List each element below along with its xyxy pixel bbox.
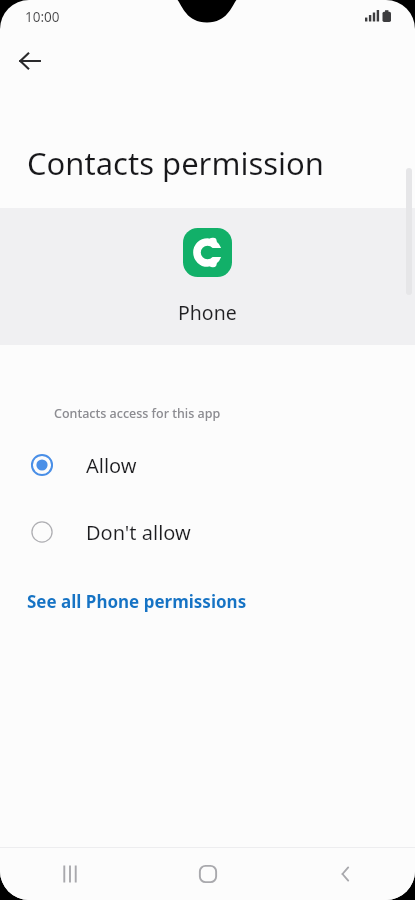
button[interactable]: Home	[139, 848, 277, 900]
staticText: Contacts permission	[27, 142, 401, 184]
button[interactable]: Back	[10, 41, 50, 81]
staticText: Phone	[178, 299, 237, 326]
staticText: See all Phone permissions	[27, 590, 247, 613]
button[interactable]: See all Phone permissions	[0, 586, 415, 617]
staticText: Don't allow	[86, 519, 191, 546]
button[interactable]: Recents	[0, 848, 139, 900]
staticText: Allow	[86, 452, 137, 479]
button[interactable]: Don't allow	[0, 515, 415, 549]
button[interactable]: Back	[277, 848, 415, 900]
staticText: Contacts access for this app	[54, 405, 221, 422]
staticText: 10:00	[25, 8, 60, 26]
button[interactable]: Allow	[0, 448, 415, 482]
